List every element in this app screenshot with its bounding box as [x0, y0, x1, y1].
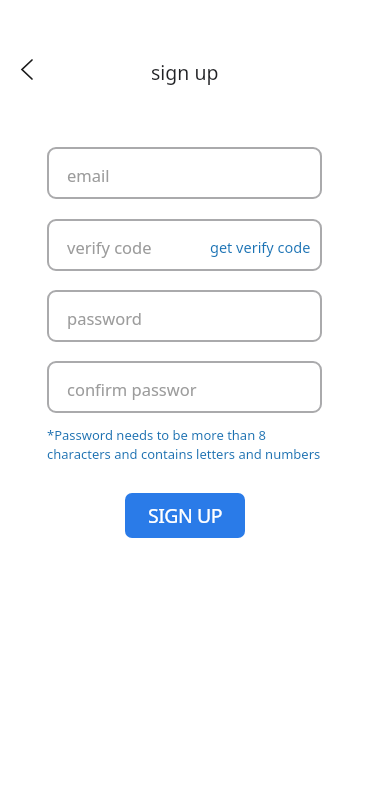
staticText: *Password needs to be more than 8 charac… — [47, 426, 321, 462]
button[interactable]: get verify code — [210, 235, 311, 255]
staticText: verify code — [67, 236, 152, 258]
staticText: SIGN UP — [148, 502, 222, 529]
button[interactable]: verify code — [47, 219, 322, 271]
button[interactable]: password — [47, 290, 322, 342]
staticText: password — [67, 307, 142, 329]
staticText: get verify code — [210, 237, 311, 257]
button[interactable]: email — [47, 147, 322, 199]
button[interactable] — [13, 55, 41, 83]
staticText: sign up — [151, 59, 219, 86]
button[interactable]: confirm passwor — [47, 361, 322, 413]
staticText: email — [67, 164, 110, 186]
button[interactable]: SIGN UP — [125, 493, 245, 538]
staticText: confirm passwor — [67, 378, 197, 400]
